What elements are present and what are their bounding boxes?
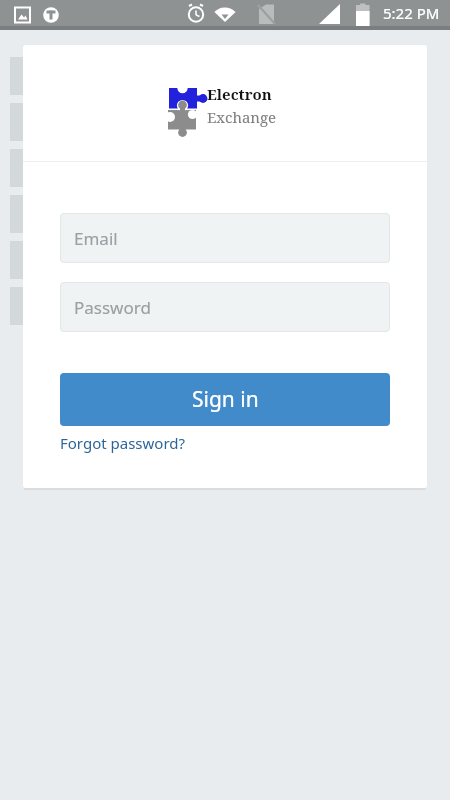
button[interactable]: Password <box>60 282 390 332</box>
button[interactable]: Email <box>60 213 390 263</box>
staticText: Password <box>74 296 151 319</box>
staticText: Exchange <box>207 107 277 127</box>
staticText: Forgot password? <box>60 433 186 453</box>
staticText: 5:22 PM <box>383 3 440 23</box>
staticText: Email <box>74 227 118 250</box>
staticText: Sign in <box>192 385 259 414</box>
button[interactable]: Sign in <box>60 373 390 426</box>
button[interactable]: Forgot password? <box>60 433 186 453</box>
staticText: Electron <box>207 84 272 104</box>
